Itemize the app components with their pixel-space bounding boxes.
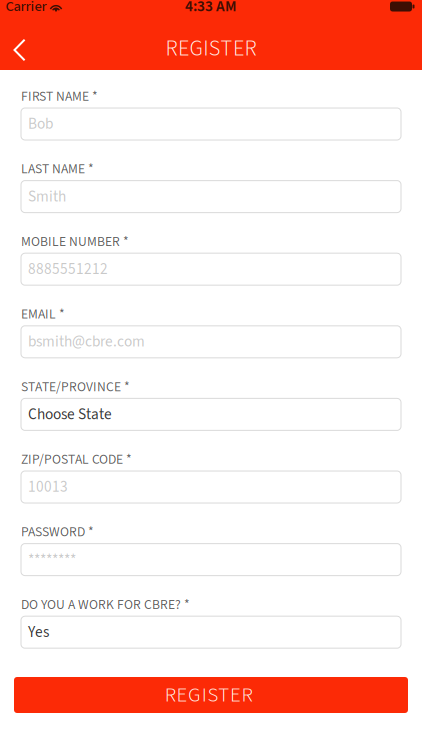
staticText: PASSWORD * xyxy=(21,522,94,542)
staticText: MOBILE NUMBER * xyxy=(21,232,129,251)
staticText: 4:33 AM xyxy=(185,0,237,17)
staticText: DO YOU A WORK FOR CBRE? * xyxy=(21,595,190,614)
staticText: Smith xyxy=(28,186,66,207)
staticText: FIRST NAME * xyxy=(21,87,98,106)
staticText: ******** xyxy=(28,549,76,570)
staticText: Bob xyxy=(28,113,53,135)
staticText: 10013 xyxy=(28,476,68,498)
staticText: EMAIL * xyxy=(21,305,65,324)
staticText: bsmith@cbre.com xyxy=(28,331,145,353)
staticText: STATE/PROVINCE * xyxy=(21,377,130,397)
button[interactable]: REGISTER xyxy=(14,677,408,713)
staticText: REGISTER xyxy=(165,680,257,710)
staticText: Choose State xyxy=(28,403,112,425)
staticText: 8885551212 xyxy=(28,258,108,280)
staticText: Carrier xyxy=(5,0,46,17)
staticText: ZIP/POSTAL CODE * xyxy=(21,450,132,469)
staticText: LAST NAME * xyxy=(21,159,94,179)
button[interactable]: Back xyxy=(0,32,46,64)
staticText: Yes xyxy=(28,621,49,643)
staticText: REGISTER xyxy=(165,33,257,64)
